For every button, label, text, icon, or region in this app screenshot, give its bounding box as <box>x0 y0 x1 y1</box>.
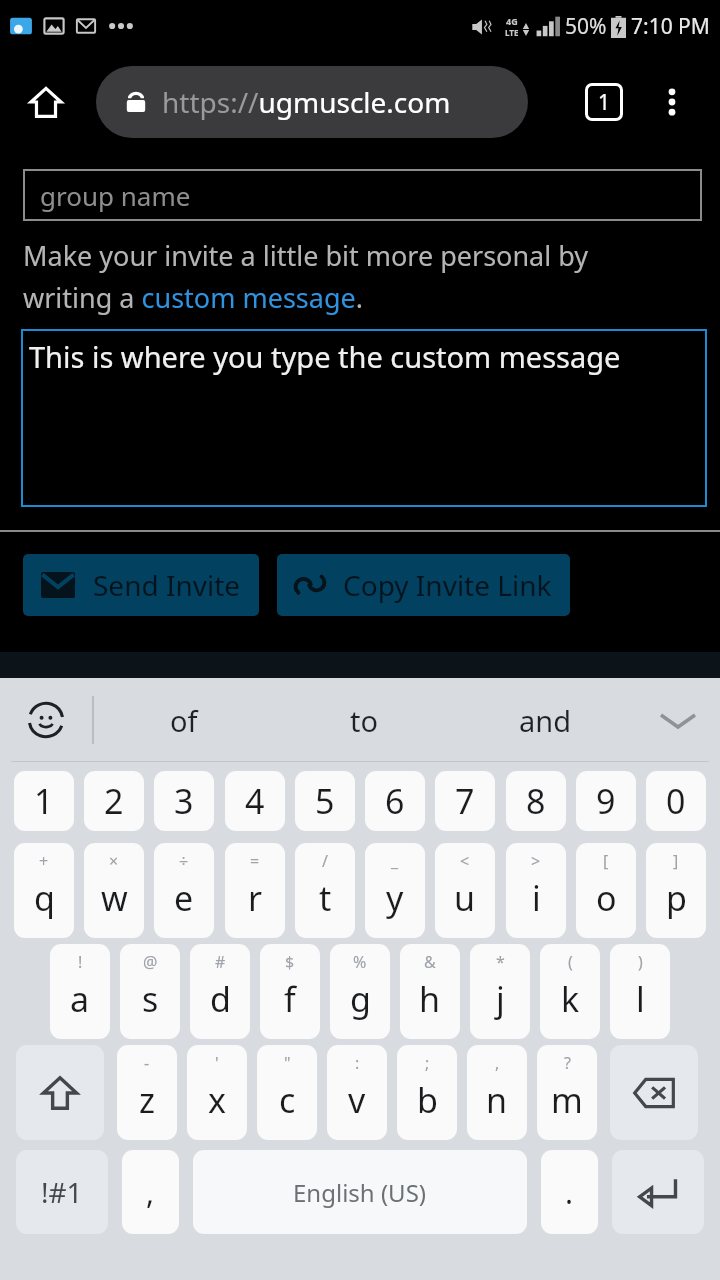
staticText: 1 <box>598 88 611 117</box>
staticText: , <box>146 1172 155 1213</box>
staticText: ) <box>638 951 643 973</box>
button[interactable]: / <box>295 843 355 938</box>
staticText: * <box>496 951 505 973</box>
button[interactable]: group name <box>23 169 702 221</box>
button[interactable]: Copy Invite Link <box>277 554 570 616</box>
button[interactable]: - <box>117 1045 177 1140</box>
staticText: < <box>460 850 470 872</box>
staticText: : <box>355 1052 360 1074</box>
button[interactable]: 3 <box>154 771 214 831</box>
staticText: 6 <box>385 778 405 824</box>
staticText: 4G <box>506 15 518 27</box>
staticText: - <box>144 1052 150 1074</box>
staticText: g <box>350 976 371 1022</box>
button[interactable]: Tabs <box>574 72 634 132</box>
button[interactable]: " <box>257 1045 317 1140</box>
button[interactable]: 4 <box>225 771 285 831</box>
staticText: a <box>70 976 90 1022</box>
button[interactable]: Home <box>16 72 76 132</box>
staticText: ; <box>425 1052 430 1074</box>
staticText: $ <box>285 951 295 973</box>
button[interactable]: . <box>541 1150 598 1234</box>
button[interactable]: 2 <box>84 771 144 831</box>
button[interactable]: = <box>225 843 285 938</box>
button[interactable]: of <box>94 678 274 762</box>
staticText: r <box>248 875 263 921</box>
staticText: English (US) <box>293 1176 427 1209</box>
staticText: 1 <box>34 778 54 824</box>
button[interactable]: < <box>435 843 495 938</box>
staticText: c <box>279 1077 296 1123</box>
staticText: " <box>284 1052 291 1074</box>
button[interactable]: , <box>467 1045 527 1140</box>
button[interactable]: [ <box>576 843 636 938</box>
button[interactable]: 9 <box>576 771 636 831</box>
staticText: _ <box>391 850 399 872</box>
staticText: / <box>322 850 328 872</box>
staticText: × <box>109 850 119 872</box>
button[interactable]: Send Invite <box>23 554 259 616</box>
button[interactable]: : <box>327 1045 387 1140</box>
button[interactable]: 1 <box>14 771 74 831</box>
button[interactable]: Shift <box>16 1045 104 1140</box>
button[interactable]: to <box>274 678 455 762</box>
button[interactable]: https://ugmuscle.com <box>96 66 528 138</box>
staticText: of <box>170 701 198 740</box>
button[interactable]: $ <box>260 944 320 1039</box>
button[interactable]: Expand suggestions <box>636 678 720 762</box>
button[interactable]: English (US) <box>193 1150 527 1234</box>
button[interactable]: # <box>190 944 250 1039</box>
button[interactable]: Backspace <box>610 1045 698 1140</box>
staticText: m <box>551 1077 583 1123</box>
button[interactable]: × <box>84 843 144 938</box>
staticText: !#1 <box>41 1173 83 1211</box>
button[interactable]: 0 <box>646 771 706 831</box>
staticText: x <box>208 1077 226 1123</box>
button[interactable]: This is where you type the custom messag… <box>21 329 707 507</box>
button[interactable]: & <box>400 944 460 1039</box>
staticText: e <box>174 875 194 921</box>
staticText: n <box>486 1077 508 1123</box>
staticText: = <box>250 850 260 872</box>
staticText: + <box>39 850 49 872</box>
button[interactable]: , <box>122 1150 179 1234</box>
button[interactable]: ! <box>50 944 110 1039</box>
button[interactable]: Emoji <box>0 678 92 762</box>
button[interactable]: ] <box>646 843 706 938</box>
button[interactable]: _ <box>365 843 425 938</box>
button[interactable]: ? <box>537 1045 597 1140</box>
staticText: # <box>215 951 226 973</box>
button[interactable]: ' <box>187 1045 247 1140</box>
staticText: % <box>353 951 367 973</box>
button[interactable]: @ <box>120 944 180 1039</box>
button[interactable]: and <box>455 678 636 762</box>
button[interactable]: ( <box>540 944 600 1039</box>
button[interactable]: 6 <box>365 771 425 831</box>
staticText: f <box>284 976 296 1022</box>
staticText: 2 <box>104 778 124 824</box>
staticText: 7:10 PM <box>631 12 710 41</box>
button[interactable]: ; <box>397 1045 457 1140</box>
button[interactable]: 8 <box>506 771 566 831</box>
staticText: 8 <box>526 778 546 824</box>
button[interactable]: > <box>506 843 566 938</box>
button[interactable]: % <box>330 944 390 1039</box>
button[interactable]: More options <box>642 72 702 132</box>
staticText: 9 <box>596 778 616 824</box>
staticText: z <box>139 1077 155 1123</box>
staticText: Make your invite a little bit more perso… <box>23 237 650 316</box>
staticText: t <box>319 875 332 921</box>
button[interactable]: ) <box>610 944 670 1039</box>
staticText: 0 <box>666 778 686 824</box>
button[interactable]: + <box>14 843 74 938</box>
staticText: ÷ <box>179 850 189 872</box>
button[interactable]: * <box>470 944 530 1039</box>
staticText: 5 <box>315 778 335 824</box>
staticText: . <box>565 1172 574 1213</box>
button[interactable]: Enter <box>612 1150 704 1234</box>
button[interactable]: ÷ <box>154 843 214 938</box>
staticText: 4 <box>245 778 265 824</box>
button[interactable]: 7 <box>435 771 495 831</box>
button[interactable]: 5 <box>295 771 355 831</box>
button[interactable]: !#1 <box>16 1150 108 1234</box>
